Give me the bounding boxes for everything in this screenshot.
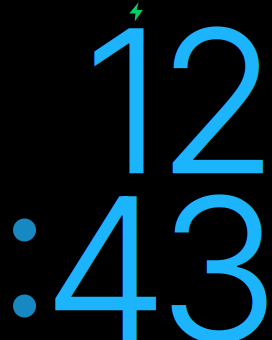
staticText: 43 xyxy=(46,149,272,340)
staticText: 12 xyxy=(87,0,272,221)
